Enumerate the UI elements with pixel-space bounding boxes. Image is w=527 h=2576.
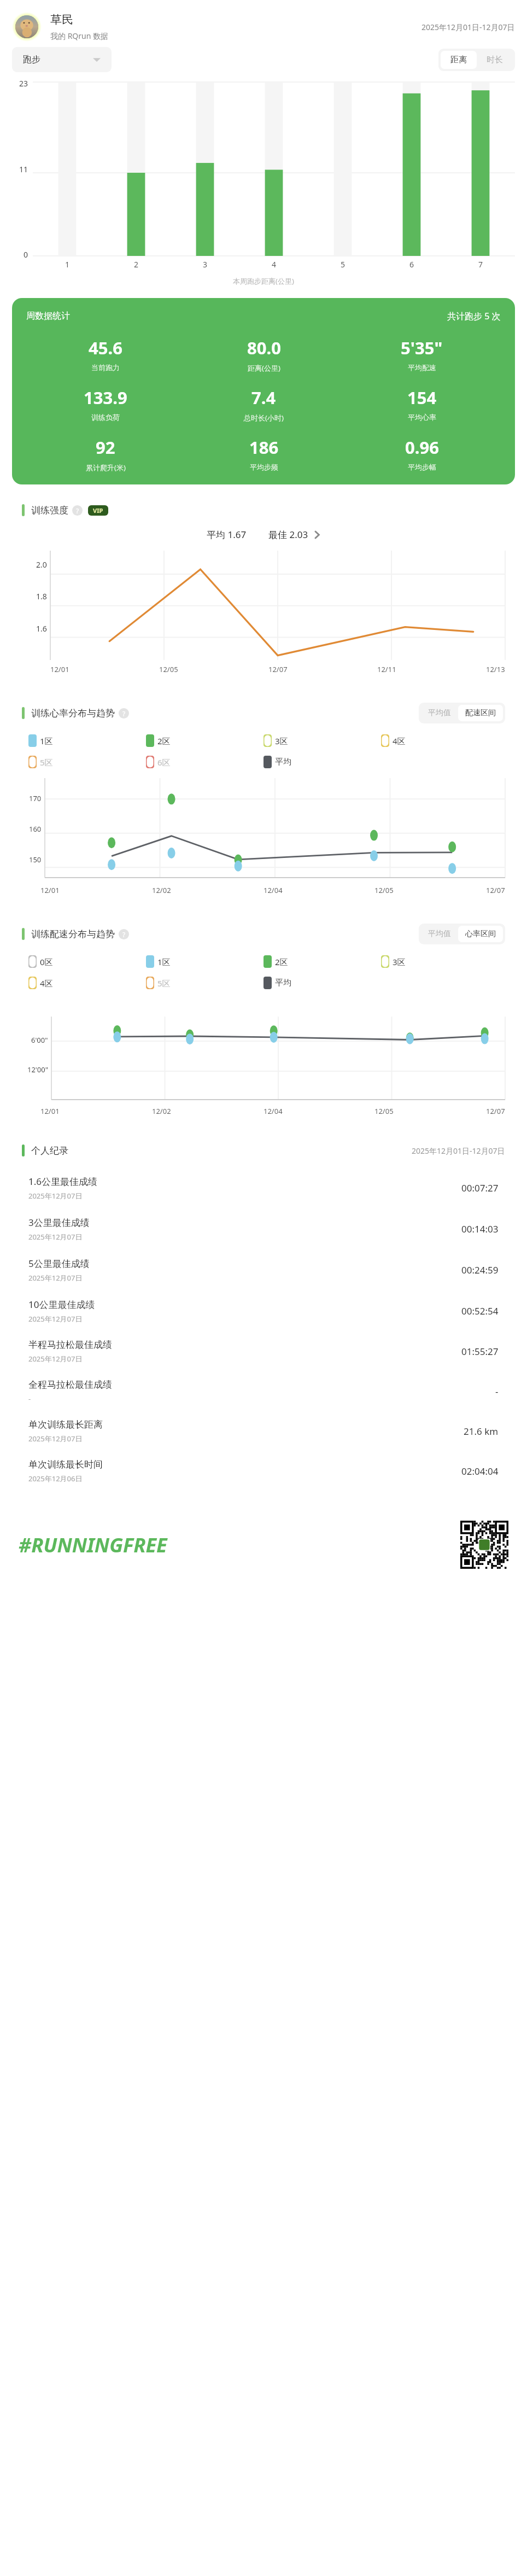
staticText: 150: [29, 855, 42, 864]
button[interactable]: 平均值: [421, 926, 458, 942]
staticText: 2025年12月07日: [28, 1273, 83, 1283]
staticText: 5区: [157, 978, 171, 989]
staticText: 心率区间: [465, 929, 496, 939]
staticText: 2025年12月01日-12月07日: [412, 1146, 505, 1156]
button[interactable]: 0区: [28, 955, 146, 968]
staticText: 00:24:59: [461, 1264, 499, 1276]
staticText: 01:55:27: [461, 1345, 499, 1358]
staticText: 平均 1.67: [207, 528, 247, 541]
staticText: 2025年12月07日: [28, 1314, 83, 1324]
staticText: 6区: [157, 757, 171, 768]
staticText: 训练负荷: [91, 413, 120, 422]
staticText: 02:04:04: [461, 1465, 499, 1477]
staticText: 平均: [275, 757, 291, 767]
staticText: 12/05: [159, 664, 178, 674]
staticText: 23: [19, 78, 28, 89]
staticText: #RUNNINGFREE: [19, 1532, 167, 1558]
button[interactable]: 2区: [146, 734, 263, 747]
staticText: 5'35": [401, 336, 443, 359]
staticText: 11: [19, 164, 28, 174]
staticText: 训练配速分布与趋势: [31, 928, 115, 940]
staticText: 本周跑步距离(公里): [233, 276, 294, 286]
button[interactable]: 全程马拉松最佳成绩: [12, 1371, 515, 1411]
staticText: 2区: [275, 956, 288, 967]
staticText: 5: [341, 259, 346, 270]
button[interactable]: 平均值: [421, 705, 458, 721]
button[interactable]: 1区: [146, 955, 263, 968]
button[interactable]: 平均: [263, 756, 381, 768]
button[interactable]: 时长: [477, 51, 513, 69]
staticText: 12/01: [40, 1106, 60, 1116]
staticText: 7.4: [251, 386, 276, 409]
staticText: 2025年12月01日-12月07日: [421, 22, 515, 32]
staticText: 12/05: [374, 885, 394, 895]
staticText: 周数据统计: [26, 311, 70, 322]
button[interactable]: 心率区间: [458, 926, 503, 942]
button[interactable]: 5区: [146, 977, 263, 989]
button[interactable]: Help: [119, 708, 129, 719]
button[interactable]: 平均: [263, 977, 381, 989]
button[interactable]: Help: [72, 505, 83, 516]
staticText: 92: [96, 436, 115, 459]
staticText: 133.9: [84, 386, 127, 409]
staticText: 最佳 2.03: [268, 528, 308, 541]
staticText: 单次训练最长距离: [28, 1419, 103, 1430]
button[interactable]: 5公里最佳成绩: [12, 1249, 515, 1290]
button[interactable]: 10公里最佳成绩: [12, 1290, 515, 1331]
staticText: 12/02: [152, 885, 171, 895]
button[interactable]: 跑步: [12, 47, 112, 72]
button[interactable]: 1.6公里最佳成绩: [12, 1167, 515, 1208]
button[interactable]: 4区: [381, 734, 499, 747]
staticText: 跑步: [23, 54, 40, 65]
button[interactable]: 距离: [441, 51, 477, 69]
button[interactable]: 4区: [28, 977, 146, 989]
staticText: 12/04: [263, 1106, 283, 1116]
staticText: 12/13: [486, 664, 505, 674]
button[interactable]: 3公里最佳成绩: [12, 1208, 515, 1249]
staticText: 累计爬升(米): [86, 463, 126, 472]
staticText: 12/07: [486, 1106, 505, 1116]
staticText: 3区: [393, 956, 406, 967]
staticText: 平均值: [428, 929, 451, 939]
staticText: 5区: [40, 757, 53, 768]
button[interactable]: 单次训练最长距离: [12, 1411, 515, 1451]
button[interactable]: 周数据统计: [12, 298, 515, 484]
staticText: 2025年12月07日: [28, 1434, 83, 1444]
staticText: 2025年12月07日: [28, 1232, 83, 1242]
staticText: 0区: [40, 956, 53, 967]
staticText: 5公里最佳成绩: [28, 1257, 90, 1270]
staticText: 半程马拉松最佳成绩: [28, 1339, 112, 1351]
staticText: 平均步幅: [408, 463, 436, 471]
button[interactable]: [12, 12, 42, 42]
staticText: 12/11: [377, 664, 396, 674]
staticText: 2.0: [36, 559, 47, 570]
staticText: 我的 RQrun 数据: [50, 31, 109, 41]
staticText: 1.8: [36, 591, 47, 601]
staticText: 距离(公里): [248, 363, 280, 373]
staticText: 6'00": [31, 1035, 48, 1045]
staticText: VIP: [93, 506, 103, 515]
staticText: 单次训练最长时间: [28, 1459, 103, 1470]
button[interactable]: 6区: [146, 756, 263, 768]
staticText: 00:14:03: [461, 1223, 499, 1235]
staticText: 1.6: [36, 623, 47, 634]
staticText: 3公里最佳成绩: [28, 1216, 90, 1229]
button[interactable]: 1区: [28, 734, 146, 747]
button[interactable]: 2区: [263, 955, 381, 968]
staticText: 3区: [275, 735, 288, 746]
staticText: 12/07: [486, 885, 505, 895]
staticText: 总时长(小时): [244, 413, 284, 423]
staticText: 配速区间: [465, 708, 496, 718]
staticText: 12/01: [50, 664, 69, 674]
button[interactable]: 单次训练最长时间: [12, 1451, 515, 1491]
staticText: 160: [29, 824, 42, 834]
button[interactable]: Help: [119, 929, 129, 939]
staticText: 平均: [275, 978, 291, 988]
staticText: 21.6 km: [464, 1425, 499, 1438]
button[interactable]: 最佳 2.03: [268, 528, 320, 541]
button[interactable]: 3区: [381, 955, 499, 968]
button[interactable]: 配速区间: [458, 705, 503, 721]
button[interactable]: 半程马拉松最佳成绩: [12, 1331, 515, 1371]
button[interactable]: 5区: [28, 756, 146, 768]
button[interactable]: 3区: [263, 734, 381, 747]
